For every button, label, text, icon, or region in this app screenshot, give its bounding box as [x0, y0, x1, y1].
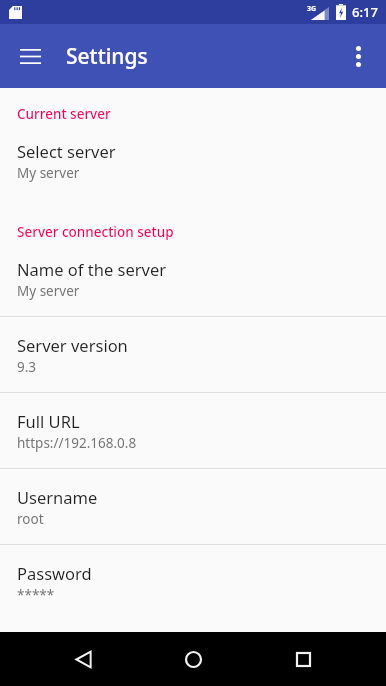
- staticText: 6:17: [352, 3, 378, 21]
- button[interactable]: Recent apps: [276, 632, 330, 686]
- staticText: Current server: [17, 105, 370, 123]
- staticText: Full URL: [17, 410, 80, 432]
- staticText: Server version: [17, 334, 128, 356]
- button[interactable]: More options: [334, 32, 382, 80]
- button[interactable]: Password: [0, 545, 386, 620]
- staticText: root: [17, 510, 44, 528]
- staticText: Select server: [17, 140, 116, 162]
- staticText: Username: [17, 486, 98, 508]
- button[interactable]: Back: [56, 632, 110, 686]
- button[interactable]: Username: [0, 469, 386, 544]
- staticText: https://192.168.0.8: [17, 434, 137, 452]
- button[interactable]: Full URL: [0, 393, 386, 468]
- staticText: *****: [17, 586, 55, 604]
- button[interactable]: Home: [166, 632, 220, 686]
- staticText: Name of the server: [17, 258, 167, 280]
- button[interactable]: Server version: [0, 317, 386, 392]
- staticText: Server connection setup: [17, 223, 370, 241]
- staticText: 3G: [307, 4, 317, 14]
- button[interactable]: Name of the server: [0, 241, 386, 316]
- staticText: 9.3: [17, 358, 37, 376]
- button[interactable]: Open navigation drawer: [6, 32, 54, 80]
- staticText: My server: [17, 164, 80, 182]
- staticText: Settings: [66, 42, 148, 71]
- button[interactable]: Select server: [0, 123, 386, 198]
- staticText: My server: [17, 282, 80, 300]
- staticText: Password: [17, 562, 92, 584]
